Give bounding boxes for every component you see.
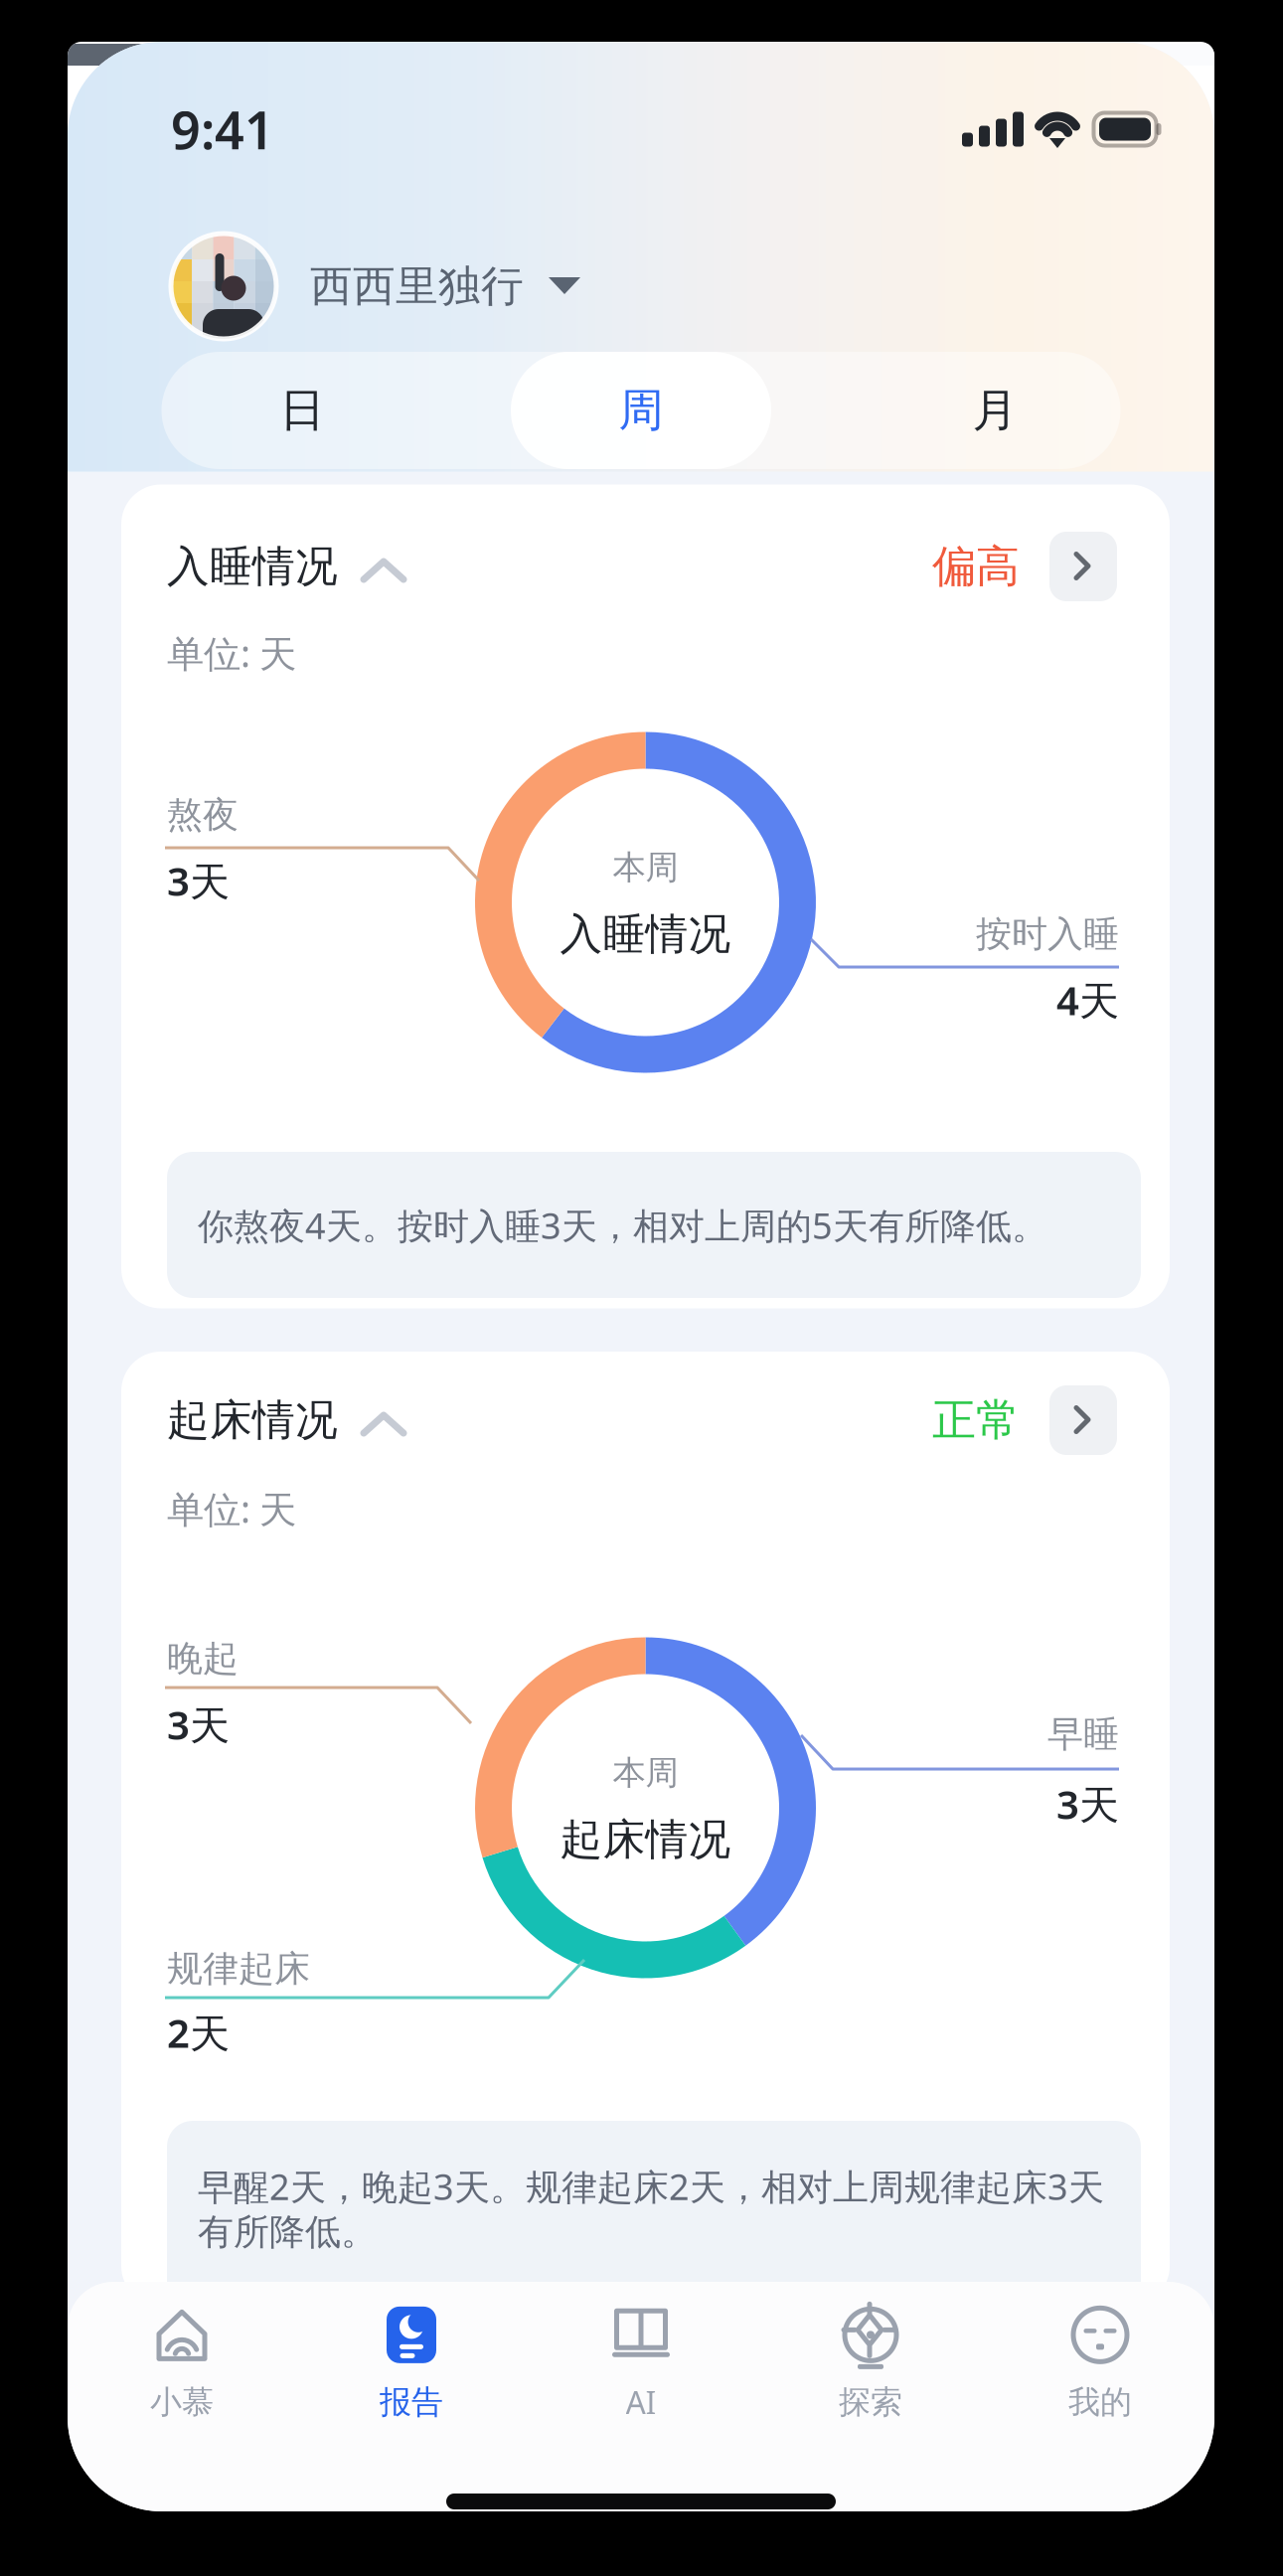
staticText: 本周 [613, 1753, 678, 1793]
staticText: 日 [280, 383, 324, 438]
button[interactable]: 日 [137, 352, 468, 469]
button[interactable]: 月 [829, 352, 1160, 469]
staticText: 单位: 天 [167, 628, 296, 678]
staticText: 晚起 [167, 1637, 239, 1681]
staticText: 本周 [613, 847, 678, 888]
button[interactable]: 我的 [1001, 2294, 1200, 2433]
button[interactable]: Details [1049, 1385, 1117, 1455]
staticText: 早睡 [1047, 1712, 1119, 1756]
staticText: 3天 [167, 1698, 230, 1751]
button[interactable]: Collapse [348, 545, 419, 596]
staticText: 9:41 [171, 95, 274, 164]
staticText: 探索 [839, 2383, 902, 2422]
staticText: 3天 [1056, 1777, 1119, 1830]
staticText: 月 [972, 383, 1017, 438]
button[interactable]: 探索 [771, 2294, 970, 2433]
staticText: 4天 [1056, 973, 1119, 1026]
staticText: 偏高 [932, 540, 1020, 593]
staticText: 入睡情况 [167, 540, 338, 593]
staticText: 按时入睡 [976, 912, 1119, 956]
button[interactable]: Details [1049, 532, 1117, 601]
staticText: 熬夜 [167, 793, 239, 837]
staticText: 我的 [1068, 2383, 1132, 2422]
staticText: 起床情况 [167, 1394, 338, 1446]
button[interactable]: 小慕 [82, 2294, 281, 2433]
button[interactable]: 报告 [312, 2294, 511, 2433]
staticText: 西西里独行 [310, 260, 524, 312]
staticText: 2天 [167, 2006, 230, 2059]
staticText: 入睡情况 [560, 908, 731, 960]
staticText: 3天 [167, 854, 230, 907]
button[interactable]: 西西里独行 [171, 227, 688, 346]
staticText: 起床情况 [560, 1814, 731, 1866]
staticText: AI [626, 2381, 656, 2423]
staticText: 小慕 [150, 2383, 214, 2422]
button[interactable]: AI [542, 2294, 740, 2433]
staticText: 正常 [932, 1393, 1020, 1447]
staticText: 规律起床 [167, 1947, 310, 1991]
staticText: 周 [619, 383, 663, 438]
button[interactable]: Collapse [348, 1398, 419, 1450]
staticText: 单位: 天 [167, 1484, 296, 1533]
button[interactable]: 周 [511, 352, 771, 469]
staticText: 早醒2天，晚起3天。规律起床2天，相对上周规律起床3天有所降低。 [198, 2163, 1104, 2254]
staticText: 你熬夜4天。按时入睡3天，相对上周的5天有所降低。 [198, 1202, 1047, 1249]
staticText: 报告 [380, 2383, 443, 2422]
